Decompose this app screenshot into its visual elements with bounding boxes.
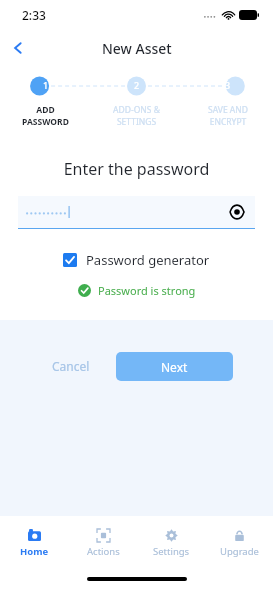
staticText: 2:33 — [22, 7, 46, 23]
staticText: Actions — [87, 545, 120, 558]
button[interactable]: Settings — [137, 520, 205, 566]
button[interactable]: Show password — [18, 196, 255, 228]
staticText: Upgrade — [220, 545, 259, 558]
button[interactable]: Cancel — [42, 351, 100, 381]
staticText: 3 — [225, 79, 231, 91]
button[interactable]: Password generator — [63, 251, 210, 269]
staticText: 1 — [43, 79, 49, 91]
staticText: Password generator — [86, 251, 210, 269]
staticText: 2 — [134, 79, 140, 91]
button[interactable]: Next — [116, 352, 233, 381]
staticText: Home — [20, 545, 49, 558]
staticText: ADD-ONS & SETTINGS — [113, 104, 160, 128]
staticText: Cancel — [52, 358, 90, 374]
staticText: Enter the password — [0, 158, 273, 180]
button[interactable]: Upgrade — [205, 520, 273, 566]
button[interactable]: Show password — [225, 200, 249, 224]
staticText: SAVE AND ENCRYPT — [208, 104, 248, 128]
staticText: Password is strong — [98, 283, 196, 298]
staticText: ADD PASSWORD — [22, 104, 69, 128]
button[interactable]: Home — [0, 520, 69, 566]
staticText: Next — [161, 359, 188, 375]
staticText: New Asset — [102, 39, 172, 58]
button[interactable]: Actions — [69, 520, 137, 566]
staticText: Settings — [153, 545, 190, 558]
button[interactable]: Back — [0, 30, 36, 66]
